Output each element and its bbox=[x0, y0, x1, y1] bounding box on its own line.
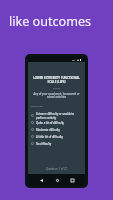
button[interactable]: Moderate difficulty bbox=[31, 126, 82, 133]
staticText: Quite a bit of difficulty bbox=[36, 121, 64, 125]
staticText: Moderate difficulty bbox=[36, 128, 60, 132]
button[interactable]: No difficulty bbox=[31, 140, 82, 147]
staticText: Question 1 of 21 bbox=[28, 167, 85, 171]
staticText: (LEFS) bbox=[28, 86, 85, 89]
staticText: No difficulty bbox=[36, 142, 52, 146]
staticText: like outcomes bbox=[9, 13, 92, 30]
button[interactable]: Home bbox=[54, 177, 60, 183]
staticText: A little bit of difficulty bbox=[36, 135, 63, 139]
button[interactable]: A little bit of difficulty bbox=[31, 133, 82, 140]
button[interactable]: Recents bbox=[69, 177, 75, 183]
staticText: LOWER EXTREMITY FUNCTIONAL SCALE (LEFS) bbox=[29, 76, 84, 84]
staticText: Any of your usual work, housework or sch… bbox=[29, 92, 84, 98]
staticText: 4G bbox=[72, 58, 76, 61]
button[interactable]: Extreme difficulty or unable to perform … bbox=[31, 111, 82, 119]
staticText: Extreme difficulty or unable to perform … bbox=[36, 112, 75, 119]
button[interactable]: Back bbox=[38, 177, 44, 183]
staticText: Select one bbox=[31, 104, 43, 107]
button[interactable]: Quite a bit of difficulty bbox=[31, 119, 82, 126]
